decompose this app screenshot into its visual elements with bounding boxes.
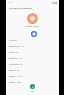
staticText: 9:41 bbox=[9, 1, 13, 4]
staticText: Llamada de emergencia bbox=[9, 7, 32, 10]
staticText: Activo bbox=[30, 90, 35, 92]
button[interactable]: Guardia bbox=[6, 67, 59, 73]
staticText: Contactos bbox=[9, 39, 17, 41]
button[interactable]: Bomberos bbox=[6, 55, 59, 61]
button[interactable]: Trabajo bbox=[6, 79, 59, 85]
staticText: 091 bbox=[16, 51, 20, 53]
button[interactable]: Familia bbox=[6, 73, 59, 79]
staticText: María bbox=[17, 75, 22, 77]
staticText: Familia bbox=[9, 75, 16, 77]
other: Location status bbox=[31, 31, 37, 37]
staticText: Bomberos bbox=[9, 57, 18, 59]
staticText: Ambulancia bbox=[9, 63, 19, 65]
button[interactable]: Policía bbox=[6, 49, 59, 55]
button[interactable]: Llamada de emergencia bbox=[9, 6, 59, 10]
staticText: Trabajo bbox=[9, 81, 16, 83]
button[interactable]: Protected status bbox=[30, 84, 35, 89]
staticText: Policía bbox=[9, 51, 15, 53]
staticText: 112 bbox=[21, 45, 25, 47]
button[interactable]: Ambulancia bbox=[6, 61, 59, 67]
staticText: Guardia bbox=[9, 69, 16, 71]
staticText: Emergencias bbox=[9, 45, 20, 47]
staticText: Mantén pulsado bbox=[26, 25, 39, 27]
staticText: 061 bbox=[20, 63, 24, 65]
staticText: 062 bbox=[17, 69, 21, 71]
button[interactable]: Emergency call button bbox=[27, 13, 38, 24]
staticText: Sede bbox=[17, 81, 22, 83]
button[interactable]: Emergencias bbox=[6, 43, 59, 49]
staticText: 080 bbox=[19, 57, 23, 59]
